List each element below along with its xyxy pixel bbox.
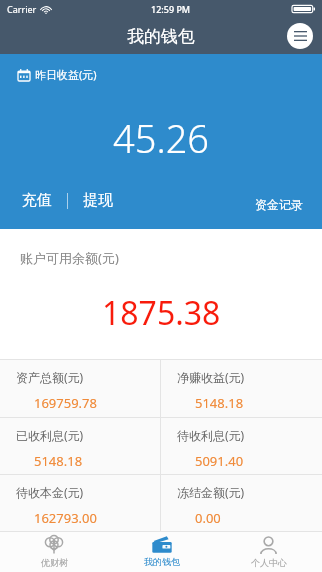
button[interactable]: 已收利息(元) xyxy=(0,418,160,474)
staticText: 我的钱包 xyxy=(127,26,195,47)
staticText: 1875.38 xyxy=(102,291,221,335)
staticText: 12:59 PM xyxy=(151,3,191,15)
staticText: Carrier xyxy=(7,3,37,15)
staticText: 充值 xyxy=(22,191,52,210)
staticText: 优财树 xyxy=(41,557,68,568)
staticText: 待收本金(元) xyxy=(16,484,84,500)
button[interactable]: 优财树 xyxy=(0,532,108,572)
staticText: 资产总额(元) xyxy=(16,369,84,385)
staticText: 45.26 xyxy=(113,112,210,164)
button[interactable]: 提现 xyxy=(81,188,115,213)
button[interactable]: 资产总额(元) xyxy=(0,360,160,417)
button[interactable]: 个人中心 xyxy=(215,532,322,572)
staticText: 提现 xyxy=(83,191,113,210)
button[interactable]: 净赚收益(元) xyxy=(161,360,322,417)
staticText: 个人中心 xyxy=(251,557,287,568)
staticText: 0.00 xyxy=(195,509,221,527)
button[interactable]: 待收利息(元) xyxy=(161,418,322,474)
button[interactable]: 待收本金(元) xyxy=(0,475,160,531)
staticText: 5091.40 xyxy=(195,452,244,470)
button[interactable]: 我的钱包 xyxy=(108,532,215,572)
staticText: 昨日收益(元) xyxy=(35,67,97,82)
staticText: 账户可用余额(元) xyxy=(20,249,119,267)
staticText: 净赚收益(元) xyxy=(177,369,245,385)
staticText: 待收利息(元) xyxy=(177,427,245,443)
staticText: 已收利息(元) xyxy=(16,427,84,443)
staticText: 5148.18 xyxy=(34,452,83,470)
button[interactable]: 充值 xyxy=(20,188,54,213)
staticText: 5148.18 xyxy=(195,394,244,412)
button[interactable]: Menu xyxy=(287,23,313,49)
staticText: 169759.78 xyxy=(34,394,97,412)
staticText: 资金记录 xyxy=(255,197,303,212)
button[interactable]: 资金记录 xyxy=(252,194,306,215)
staticText: 162793.00 xyxy=(34,509,97,527)
staticText: 冻结金额(元) xyxy=(177,484,245,500)
button[interactable]: 冻结金额(元) xyxy=(161,475,322,531)
staticText: 我的钱包 xyxy=(144,556,180,567)
